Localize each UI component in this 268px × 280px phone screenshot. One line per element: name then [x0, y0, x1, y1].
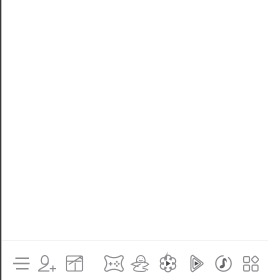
- button[interactable]: Add Contact: [34, 247, 60, 279]
- button[interactable]: Menu: [8, 247, 34, 279]
- button[interactable]: Music: [210, 247, 236, 279]
- button[interactable]: More: [237, 247, 263, 279]
- button[interactable]: Gift: [61, 247, 87, 279]
- button[interactable]: Video: [184, 247, 210, 279]
- button[interactable]: Effects: [155, 247, 181, 279]
- button[interactable]: Pet: [127, 247, 153, 279]
- button[interactable]: Stickers: [101, 247, 127, 279]
